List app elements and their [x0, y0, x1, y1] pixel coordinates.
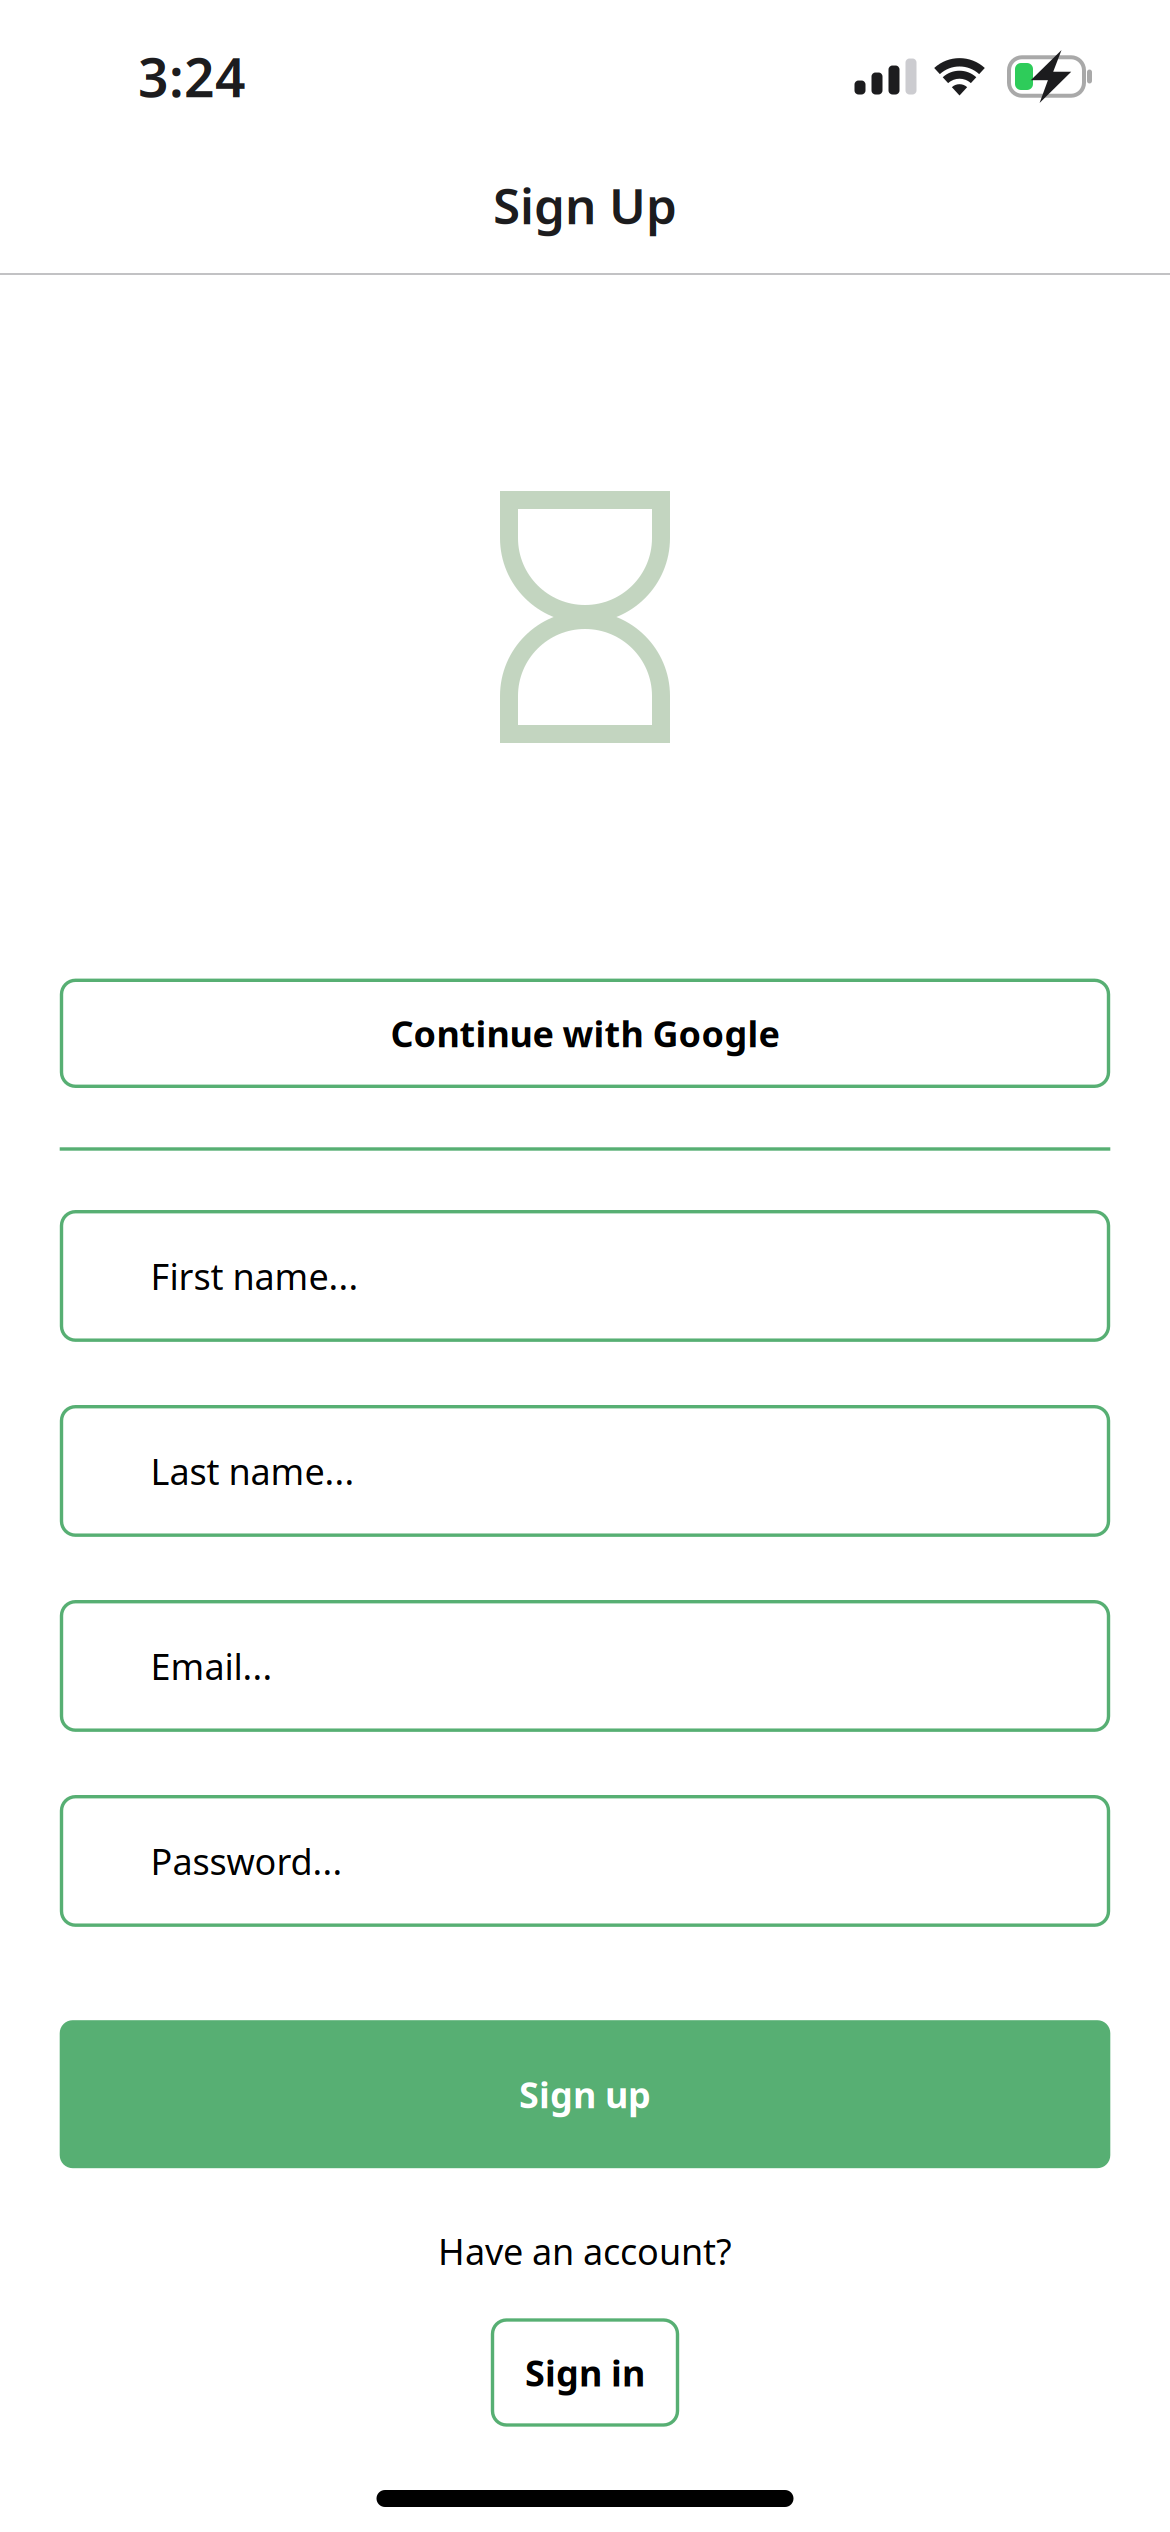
staticText: Sign up [519, 2070, 651, 2118]
staticText: Last name... [150, 1447, 354, 1495]
staticText: Password... [150, 1837, 342, 1885]
button[interactable]: Sign up [61, 2020, 1108, 2168]
staticText: First name... [150, 1252, 358, 1300]
staticText: Email... [150, 1642, 272, 1690]
button[interactable]: Email... [61, 1602, 1108, 1730]
button[interactable]: Last name... [61, 1407, 1108, 1535]
staticText: Have an account? [438, 2227, 732, 2275]
button[interactable]: Password... [61, 1797, 1108, 1925]
staticText: Continue with Google [390, 1009, 779, 1057]
button[interactable]: Continue with Google [61, 980, 1108, 1086]
button[interactable]: First name... [61, 1212, 1108, 1340]
staticText: Sign in [525, 2349, 645, 2396]
staticText: 3:24 [138, 41, 246, 112]
staticText: Sign Up [493, 172, 677, 238]
button[interactable]: Sign in [492, 2320, 677, 2425]
